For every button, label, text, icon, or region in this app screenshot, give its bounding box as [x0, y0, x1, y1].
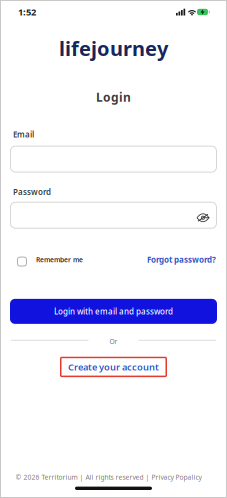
button[interactable]: Forgot password?: [147, 254, 216, 265]
button[interactable]: Show password: [197, 211, 209, 220]
staticText: Or: [109, 337, 117, 346]
staticText: Login: [96, 89, 131, 105]
button[interactable]: Create your account: [60, 357, 167, 377]
staticText: lifejourney: [59, 35, 168, 62]
staticText: 1:52: [18, 6, 36, 18]
button[interactable]: Password: [10, 202, 217, 229]
staticText: © 2026 Territorium | All rights reserved…: [15, 473, 201, 482]
staticText: Remember me: [36, 255, 83, 264]
staticText: Login with email and password: [54, 306, 173, 317]
staticText: Password: [13, 187, 51, 197]
staticText: Forgot password?: [147, 254, 216, 265]
button[interactable]: Remember me: [17, 255, 83, 265]
staticText: Create your account: [68, 361, 159, 373]
button[interactable]: Email: [0, 146, 227, 173]
staticText: Email: [13, 129, 34, 140]
button[interactable]: Login with email and password: [0, 299, 227, 324]
